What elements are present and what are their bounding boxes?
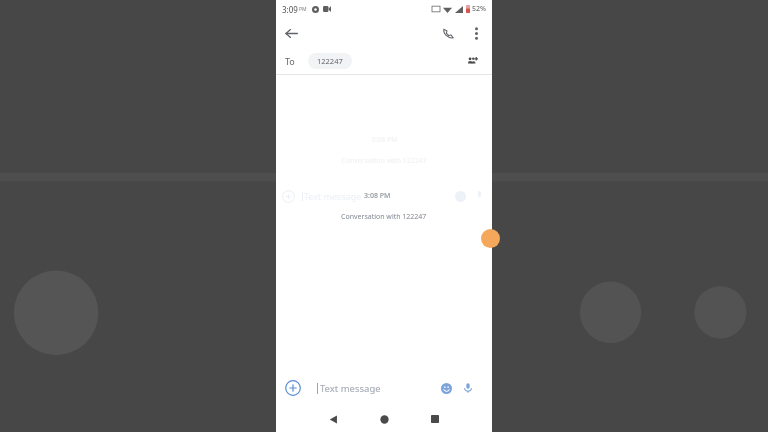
staticText: 3:08 PM xyxy=(371,135,398,145)
button[interactable]: Voice message xyxy=(458,378,478,398)
button[interactable]: Home xyxy=(367,406,401,432)
staticText: To xyxy=(285,55,295,67)
button[interactable]: Back xyxy=(316,406,350,432)
button[interactable]: Back xyxy=(276,18,306,48)
button[interactable]: Text message xyxy=(307,375,483,401)
button[interactable]: 122247 xyxy=(308,53,352,69)
button[interactable]: Add attachment xyxy=(283,378,303,398)
button[interactable]: More options xyxy=(463,20,489,46)
staticText: PM xyxy=(299,6,307,13)
button[interactable]: Call xyxy=(433,18,463,48)
staticText: Text message xyxy=(304,190,362,202)
staticText: 3:08 PM xyxy=(364,191,391,201)
button[interactable]: Recent apps xyxy=(418,406,452,432)
button[interactable]: Send xyxy=(481,229,500,248)
button[interactable]: Add people xyxy=(461,50,483,72)
staticText: Conversation with 122247 xyxy=(341,212,427,222)
staticText: Text message xyxy=(320,382,381,395)
staticText: Conversation with 122247 xyxy=(341,156,427,166)
staticText: 3:09 xyxy=(282,4,298,15)
button[interactable]: Emoji xyxy=(436,378,456,398)
staticText: 52% xyxy=(472,4,486,14)
staticText: 122247 xyxy=(317,56,343,66)
